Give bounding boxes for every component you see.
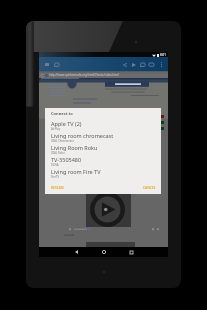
staticText: Living room chromecast [51, 132, 114, 139]
button[interactable]: Living room chromecast [45, 132, 161, 144]
button[interactable]: RESCAN [45, 184, 68, 192]
staticText: Connect to [51, 111, 73, 116]
staticText: FireTV [51, 175, 60, 179]
staticText: http://www.quirksmode.org/html5/tests/vi… [49, 73, 119, 77]
button[interactable]: Apple TV (2) [45, 120, 161, 132]
button[interactable]: CANCEL [139, 184, 161, 192]
staticText: Apple TV (2) [51, 120, 82, 127]
staticText: CANCEL [143, 186, 156, 190]
button[interactable]: Living room Fire TV [45, 168, 161, 180]
button[interactable]: Share [120, 57, 129, 72]
button[interactable]: Comments [147, 57, 156, 72]
button[interactable]: Home [99, 247, 109, 257]
button[interactable]: More options [157, 57, 165, 72]
staticText: RESCAN [51, 186, 64, 190]
staticText: AirPlay [51, 127, 61, 131]
staticText: DIAL Roku [51, 151, 65, 155]
button[interactable]: Cast to device [138, 57, 147, 72]
staticText: Living room Fire TV [51, 168, 101, 175]
staticText: TV-5505480 [51, 156, 82, 163]
staticText: 8:01 [160, 53, 166, 57]
button[interactable]: Recent apps [126, 247, 136, 257]
button[interactable]: TV-5505480 [45, 156, 161, 168]
staticText: DIAL Chromecast [51, 139, 74, 143]
button[interactable]: Cast [51, 57, 62, 72]
button[interactable]: Play [129, 57, 138, 72]
button[interactable]: Tabs [41, 57, 52, 72]
staticText: Living Room Roku [51, 144, 98, 151]
staticText: DLNA [51, 163, 59, 167]
button[interactable]: Back [71, 247, 81, 257]
button[interactable]: Living Room Roku [45, 144, 161, 156]
